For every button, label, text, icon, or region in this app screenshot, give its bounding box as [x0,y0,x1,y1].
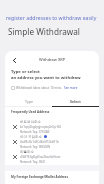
button[interactable]: Back [9,55,19,65]
button[interactable]: 리플주소 [5,149,99,164]
button[interactable]: Type [5,96,52,106]
staticText: Withdraw XRP [39,57,66,62]
staticText: Network Tag: 37XUAB [20,130,50,134]
staticText: Network Tag: 3841 [20,160,46,164]
staticText: Select [70,99,81,104]
staticText: register addresses to withdraw easily [6,14,97,21]
staticText: Network Tag: 98KLMN [20,145,51,149]
staticText: an address you want to withdraw [11,75,81,81]
staticText: Withdrawal takes about 10 mins. [16,86,63,90]
staticText: 0x4fEc3b1a9Cd8e4f12bb91b [20,140,59,144]
staticText: 비트코인주소 [20,120,41,124]
staticText: Simple Withdrawal [8,26,80,37]
button[interactable]: 이더 지갑주소 [5,134,99,149]
button[interactable]: 비트코인주소 [5,119,99,134]
staticText: 리플주소 [20,150,34,154]
staticText: Type [25,99,33,104]
staticText: 이더 지갑주소 [20,134,42,139]
button[interactable]: Select [52,96,99,106]
staticText: bc1qxy2kgdygjrsqtzq2n0yrf24 [20,125,61,129]
staticText: rEb8TK3gBgk5auZkwc6sHnwr [20,155,61,159]
staticText: My Foreign Exchange/Wallet Address [11,175,68,179]
staticText: Type or select [11,69,40,75]
staticText: See more [64,86,78,90]
staticText: Frequently Used Address [11,110,50,114]
